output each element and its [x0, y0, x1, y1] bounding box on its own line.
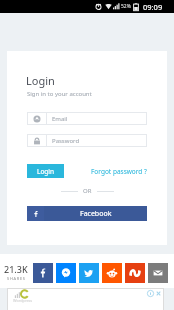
button[interactable]: Share on Facebook	[33, 263, 53, 283]
button[interactable]: Login	[27, 164, 64, 178]
staticText: Password	[52, 137, 80, 145]
button[interactable]: Facebook	[27, 206, 147, 221]
staticText: Facebook	[80, 209, 112, 219]
staticText: Login	[26, 73, 55, 88]
staticText: 21.3K	[4, 263, 28, 275]
button[interactable]: Forgot password ?	[27, 165, 147, 177]
staticText: Wordpress	[13, 298, 33, 303]
button[interactable]: Email	[27, 112, 147, 125]
button[interactable]: Password	[27, 134, 147, 147]
staticText: SHARES	[7, 276, 26, 281]
button[interactable]: Share on Messenger	[56, 263, 76, 283]
staticText: Login	[37, 167, 55, 176]
staticText: Sign in to your account	[27, 90, 92, 98]
button[interactable]: Share on StumbleUpon	[125, 263, 145, 283]
staticText: 09:09	[143, 2, 163, 12]
staticText: Forgot password ?	[91, 167, 147, 176]
button[interactable]: Share by Email	[148, 263, 168, 283]
staticText: Email	[52, 115, 68, 123]
staticText: 52%	[121, 3, 131, 10]
button[interactable]: Close ad	[155, 290, 162, 297]
button[interactable]: Share on Reddit	[102, 263, 122, 283]
staticText: OR	[83, 187, 92, 195]
button[interactable]: Share on Twitter	[79, 263, 99, 283]
